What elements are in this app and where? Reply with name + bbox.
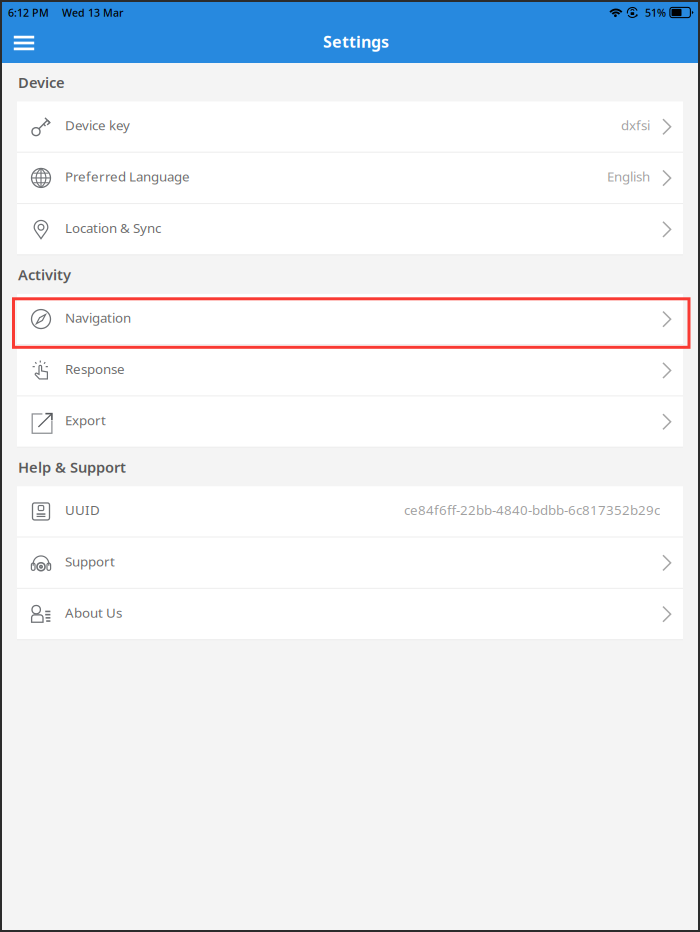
staticText: 51% xyxy=(645,5,666,20)
staticText: English xyxy=(607,168,650,185)
staticText: UUID xyxy=(65,501,100,519)
staticText: Device key xyxy=(65,116,130,134)
button[interactable]: Support xyxy=(17,538,683,588)
staticText: Export xyxy=(65,411,106,429)
staticText: Wed 13 Mar xyxy=(62,5,124,20)
staticText: Device xyxy=(18,72,65,92)
staticText: Support xyxy=(65,552,115,570)
staticText: Settings xyxy=(323,31,389,52)
button[interactable]: Menu xyxy=(6,23,42,63)
button[interactable]: UUID xyxy=(17,486,683,537)
staticText: About Us xyxy=(65,604,122,621)
staticText: Response xyxy=(65,360,125,378)
staticText: dxfsi xyxy=(621,116,650,134)
staticText: Navigation xyxy=(65,309,131,326)
staticText: ce84f6ff-22bb-4840-bdbb-6c817352b29c xyxy=(404,501,660,519)
staticText: Location & Sync xyxy=(65,219,161,237)
button[interactable]: Response xyxy=(17,345,683,395)
staticText: 6:12 PM xyxy=(8,5,49,20)
button[interactable]: Export xyxy=(17,396,683,447)
staticText: Preferred Language xyxy=(65,168,190,185)
button[interactable]: Location & Sync xyxy=(17,204,683,254)
button[interactable]: Device key xyxy=(17,101,683,152)
button[interactable]: About Us xyxy=(17,589,683,639)
staticText: Activity xyxy=(18,265,71,284)
button[interactable]: Preferred Language xyxy=(17,153,683,203)
staticText: Help & Support xyxy=(18,457,126,477)
button[interactable]: Navigation xyxy=(17,294,683,344)
